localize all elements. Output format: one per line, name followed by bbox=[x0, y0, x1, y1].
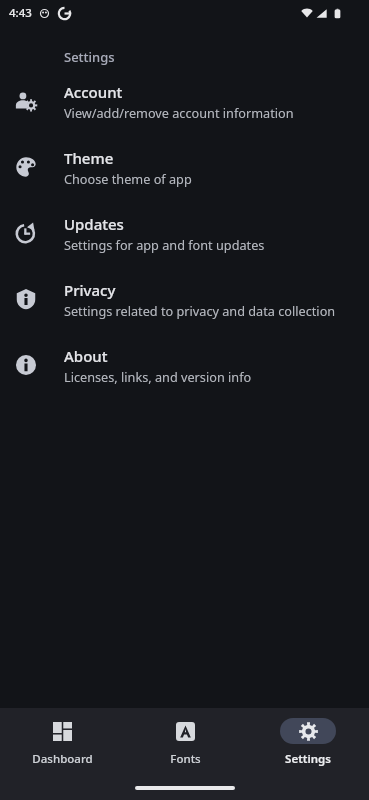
staticText: Fonts bbox=[170, 751, 201, 767]
staticText: Updates bbox=[64, 214, 124, 234]
staticText: Settings bbox=[64, 48, 115, 66]
staticText: Privacy bbox=[64, 280, 116, 300]
staticText: Settings for app and font updates bbox=[64, 236, 265, 253]
button[interactable]: Account bbox=[0, 68, 369, 134]
staticText: Dashboard bbox=[32, 751, 93, 767]
other: Mobile signal bbox=[316, 8, 327, 19]
staticText: Licenses, links, and version info bbox=[64, 368, 252, 385]
staticText: Theme bbox=[64, 148, 114, 168]
staticText: 4:43 bbox=[9, 5, 32, 21]
button[interactable]: Dashboard bbox=[12, 714, 112, 771]
staticText: Account bbox=[64, 82, 123, 102]
staticText: About bbox=[64, 346, 108, 366]
button[interactable]: Privacy bbox=[0, 266, 369, 332]
staticText: Choose theme of app bbox=[64, 170, 192, 187]
button[interactable]: About bbox=[0, 332, 369, 398]
button[interactable]: Fonts bbox=[135, 714, 235, 771]
other: Wi-Fi bbox=[301, 7, 313, 19]
staticText: Settings related to privacy and data col… bbox=[64, 302, 336, 319]
button[interactable]: Theme bbox=[0, 134, 369, 200]
staticText: Settings bbox=[285, 751, 331, 767]
other: Battery bbox=[332, 8, 343, 19]
staticText: View/add/remove account information bbox=[64, 104, 294, 121]
button[interactable]: Settings bbox=[258, 714, 358, 771]
button[interactable]: Updates bbox=[0, 200, 369, 266]
